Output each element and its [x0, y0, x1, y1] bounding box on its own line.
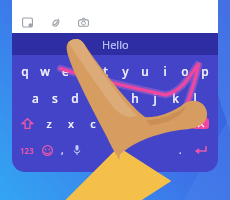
staticText: y	[122, 63, 129, 79]
button[interactable]: .	[174, 136, 187, 164]
button[interactable]	[85, 136, 174, 164]
button[interactable]: f	[85, 85, 105, 111]
staticText: d	[71, 90, 79, 106]
staticText: c	[90, 116, 96, 131]
staticText: 123	[20, 145, 34, 156]
button[interactable]: n	[145, 110, 166, 136]
staticText: a	[32, 90, 39, 106]
button[interactable]: u	[135, 56, 155, 86]
button[interactable]: c	[82, 110, 103, 136]
staticText: i	[163, 63, 167, 79]
button[interactable]: Emoji	[38, 136, 56, 164]
staticText: Hello	[102, 37, 129, 52]
button[interactable]: e	[55, 56, 75, 86]
button[interactable]: a	[25, 85, 45, 111]
button[interactable]: z	[38, 110, 60, 136]
button[interactable]: g	[105, 85, 125, 111]
button[interactable]: y	[115, 56, 135, 86]
staticText: e	[62, 63, 69, 79]
staticText: n	[152, 116, 159, 131]
button[interactable]: o	[175, 56, 195, 86]
staticText: x	[68, 116, 74, 131]
button[interactable]: t	[95, 56, 115, 86]
button[interactable]: Stickers	[20, 15, 35, 30]
button[interactable]: m	[166, 110, 187, 136]
button[interactable]: k	[165, 85, 185, 111]
staticText: g	[111, 90, 119, 106]
button[interactable]: q	[15, 56, 35, 86]
staticText: k	[172, 90, 179, 106]
staticText: .	[179, 143, 182, 157]
button[interactable]: b	[124, 110, 145, 136]
staticText: h	[131, 90, 139, 106]
button[interactable]: x	[60, 110, 82, 136]
staticText: p	[201, 63, 209, 79]
button[interactable]: w	[35, 56, 55, 86]
staticText: l	[193, 90, 197, 106]
staticText: s	[52, 90, 58, 106]
staticText: u	[141, 63, 149, 79]
button[interactable]: s	[45, 85, 65, 111]
button[interactable]: d	[65, 85, 85, 111]
staticText: b	[131, 116, 138, 131]
button[interactable]: ,	[56, 136, 69, 164]
button[interactable]: Enter	[187, 136, 214, 164]
button[interactable]: p	[195, 56, 215, 86]
staticText: ,	[61, 143, 64, 157]
button[interactable]: Hello	[12, 33, 218, 55]
staticText: z	[46, 116, 52, 131]
button[interactable]: Shift	[16, 110, 38, 136]
button[interactable]: 123	[16, 136, 38, 164]
staticText: w	[40, 63, 50, 79]
button[interactable]: j	[145, 85, 165, 111]
button[interactable]: i	[155, 56, 175, 86]
button[interactable]: v	[103, 110, 124, 136]
button[interactable]: h	[125, 85, 145, 111]
staticText: q	[21, 63, 29, 79]
staticText: r	[82, 63, 88, 79]
staticText: j	[153, 90, 157, 106]
button[interactable]: r	[75, 56, 95, 86]
staticText: t	[103, 63, 108, 79]
button[interactable]: l	[185, 85, 205, 111]
button[interactable]: Attach file	[48, 15, 63, 30]
staticText: o	[181, 63, 189, 79]
button[interactable]: Camera	[76, 15, 91, 30]
button[interactable]: Voice input	[69, 136, 85, 164]
staticText: m	[171, 116, 182, 131]
button[interactable]: Delete	[187, 110, 214, 136]
